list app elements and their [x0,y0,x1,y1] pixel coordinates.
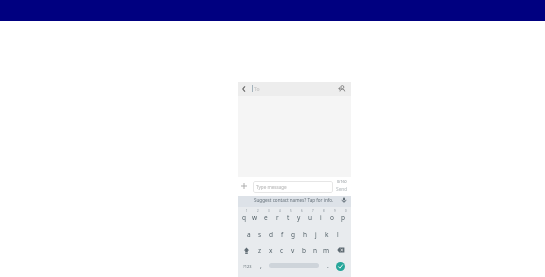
staticText: ?123 [243,264,252,269]
button[interactable] [238,177,351,196]
staticText: h [303,230,308,239]
staticText: 9 [334,209,336,213]
staticText: 8 [323,209,325,213]
button[interactable] [238,82,351,96]
staticText: s [258,230,262,239]
staticText: n [313,246,318,255]
staticText: u [308,213,313,222]
staticText: f [281,230,284,239]
staticText: j [315,230,317,239]
staticText: e [264,213,268,222]
staticText: 0 [345,209,347,213]
staticText: Send [336,186,348,193]
staticText: 5 [290,209,292,213]
staticText: p [341,213,345,222]
staticText: q [242,213,246,222]
staticText: b [302,246,306,255]
staticText: a [247,230,251,239]
staticText: z [258,246,262,255]
button[interactable] [253,181,333,193]
staticText: v [291,246,295,255]
staticText: x [269,246,273,255]
button[interactable] [238,196,351,207]
staticText: k [325,230,329,239]
staticText: d [269,230,273,239]
staticText: To [254,86,260,93]
staticText: m [323,246,330,255]
staticText: g [291,230,295,239]
staticText: o [330,213,334,222]
button[interactable] [238,207,351,277]
staticText: c [280,246,284,255]
staticText: 0/160 [337,179,347,184]
staticText: Suggest contact names? Tap for info. [254,197,334,203]
staticText: l [337,230,339,239]
staticText: Type message [256,184,287,190]
staticText: 2 [257,209,259,213]
staticText: r [276,213,279,222]
button[interactable] [336,262,345,271]
staticText: y [297,213,301,222]
staticText: 1 [246,209,248,213]
staticText: i [320,213,322,222]
staticText: . [327,261,329,270]
staticText: 4 [279,209,281,213]
staticText: 6 [301,209,303,213]
staticText: t [287,213,290,222]
staticText: 3 [268,209,270,213]
staticText: w [252,213,258,222]
staticText: , [260,261,262,270]
staticText: 7 [312,209,314,213]
